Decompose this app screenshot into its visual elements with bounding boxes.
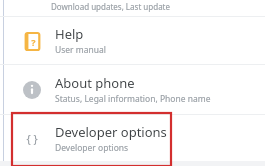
staticText: Developer options xyxy=(55,142,129,154)
other: About phone xyxy=(23,81,41,99)
other: Help xyxy=(24,33,41,50)
button[interactable]: Help xyxy=(0,17,265,64)
button[interactable]: About phone xyxy=(0,65,265,114)
staticText: Help xyxy=(55,25,84,43)
button[interactable]: Developer options xyxy=(0,115,265,161)
staticText: About phone xyxy=(55,74,135,92)
other: Developer options xyxy=(23,129,41,147)
staticText: Status, Legal information, Phone name xyxy=(55,93,211,105)
staticText: User manual xyxy=(55,44,106,56)
button[interactable]: Download updates, Last update xyxy=(0,0,265,16)
staticText: { } xyxy=(26,131,38,146)
staticText: Developer options xyxy=(55,123,167,141)
staticText: Download updates, Last update xyxy=(51,1,171,12)
staticText: ? xyxy=(31,36,36,48)
